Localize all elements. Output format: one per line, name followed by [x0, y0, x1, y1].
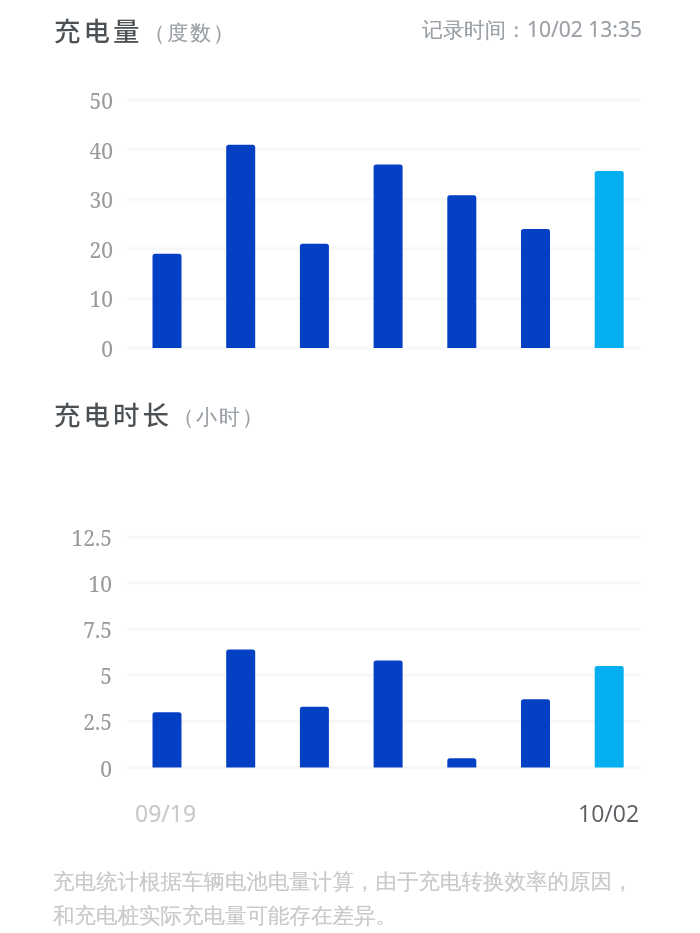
staticText: 0	[65, 335, 113, 364]
staticText: 09/19	[135, 797, 197, 828]
staticText: 10	[50, 570, 112, 599]
staticText: （小时）	[172, 404, 264, 430]
staticText: （度数）	[143, 20, 235, 46]
staticText: 充电统计根据车辆电池电量计算，由于充电转换效率的原因， 和充电桩实际充电量可能存…	[53, 868, 634, 929]
button[interactable]: 充电量图表	[0, 0, 700, 378]
staticText: 2.5	[50, 708, 112, 737]
button[interactable]: 充电时长图表	[0, 378, 700, 828]
staticText: 5	[50, 662, 112, 691]
staticText: 10	[65, 285, 113, 314]
staticText: 0	[50, 755, 112, 784]
staticText: 12.5	[50, 524, 112, 553]
staticText: 充电时长	[54, 394, 172, 432]
staticText: 20	[65, 236, 113, 265]
staticText: 50	[65, 87, 113, 116]
staticText: 充电量	[54, 10, 143, 48]
staticText: 10/02	[578, 797, 640, 828]
staticText: 30	[65, 186, 113, 215]
staticText: 40	[65, 137, 113, 166]
staticText: 记录时间：10/02 13:35	[422, 15, 642, 44]
staticText: 7.5	[50, 616, 112, 645]
